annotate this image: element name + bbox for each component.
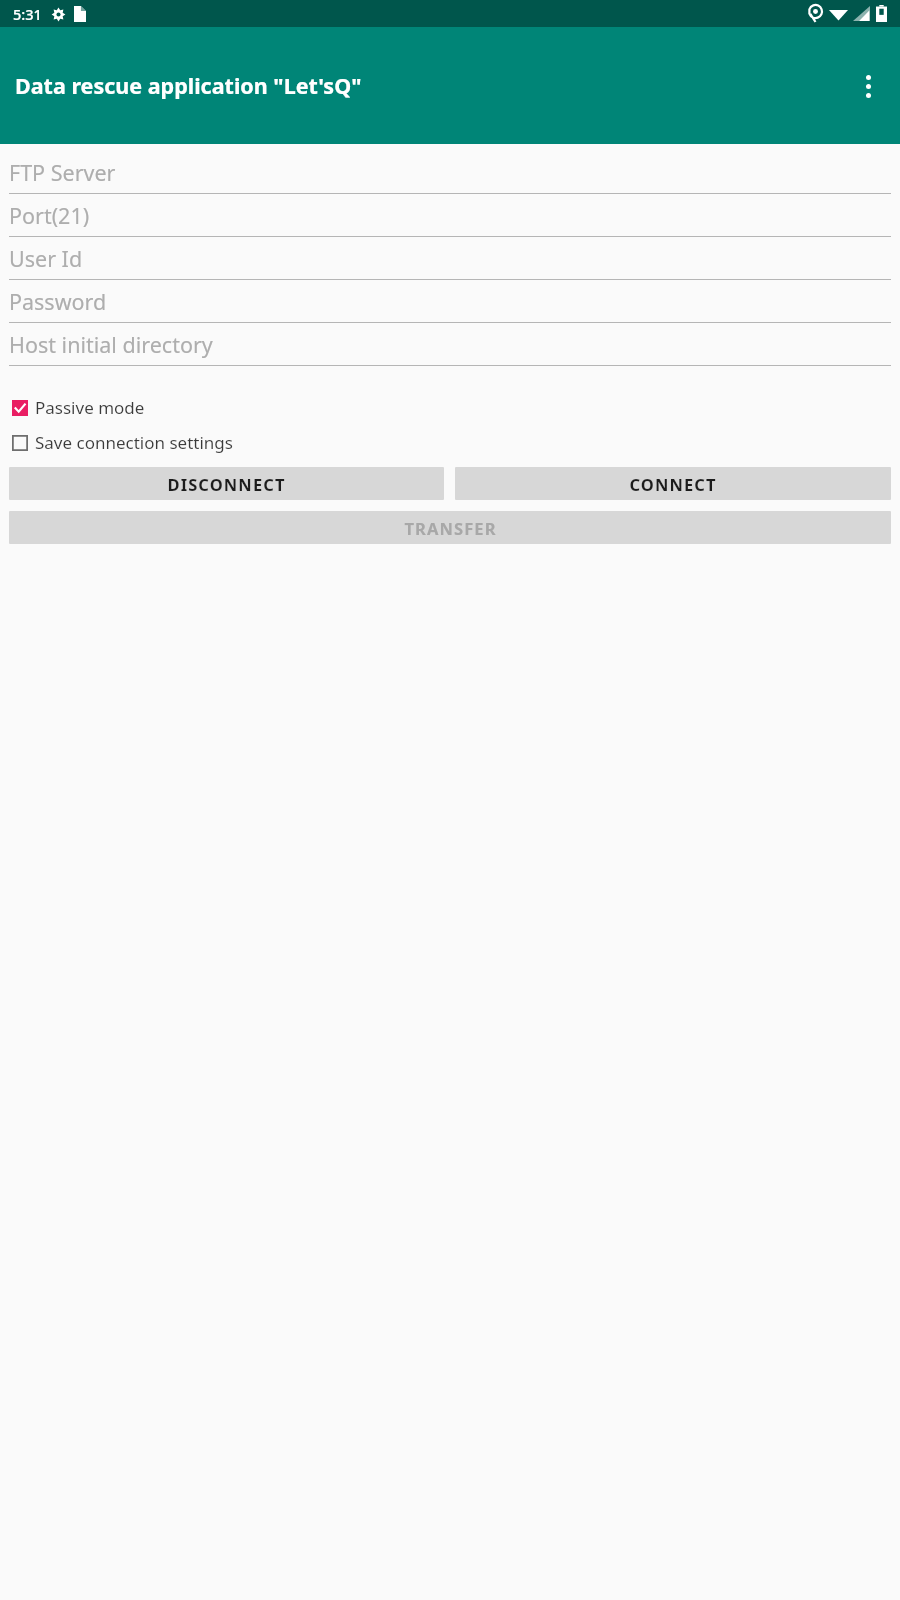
staticText: FTP Server bbox=[9, 158, 116, 187]
button[interactable]: DISCONNECT bbox=[9, 467, 444, 500]
staticText: Passive mode bbox=[35, 396, 145, 419]
button[interactable]: TRANSFER bbox=[9, 511, 891, 544]
staticText: CONNECT bbox=[629, 473, 717, 495]
staticText: DISCONNECT bbox=[167, 473, 286, 495]
button[interactable]: Host initial directory bbox=[0, 324, 900, 367]
staticText: TRANSFER bbox=[404, 517, 497, 539]
staticText: Port(21) bbox=[9, 201, 90, 230]
button[interactable]: CONNECT bbox=[455, 467, 891, 500]
button[interactable]: Passive mode bbox=[0, 393, 900, 422]
staticText: Data rescue application "Let'sQ" bbox=[15, 71, 362, 100]
button[interactable]: Password bbox=[0, 281, 900, 324]
button[interactable]: Port(21) bbox=[0, 195, 900, 238]
button[interactable]: User Id bbox=[0, 238, 900, 281]
button[interactable]: More options bbox=[844, 62, 892, 110]
staticText: Host initial directory bbox=[9, 330, 213, 359]
staticText: User Id bbox=[9, 244, 83, 273]
staticText: Password bbox=[9, 287, 107, 316]
staticText: 5:31 bbox=[13, 4, 42, 24]
staticText: Save connection settings bbox=[35, 431, 233, 454]
button[interactable]: Save connection settings bbox=[0, 428, 900, 457]
button[interactable]: FTP Server bbox=[0, 152, 900, 195]
